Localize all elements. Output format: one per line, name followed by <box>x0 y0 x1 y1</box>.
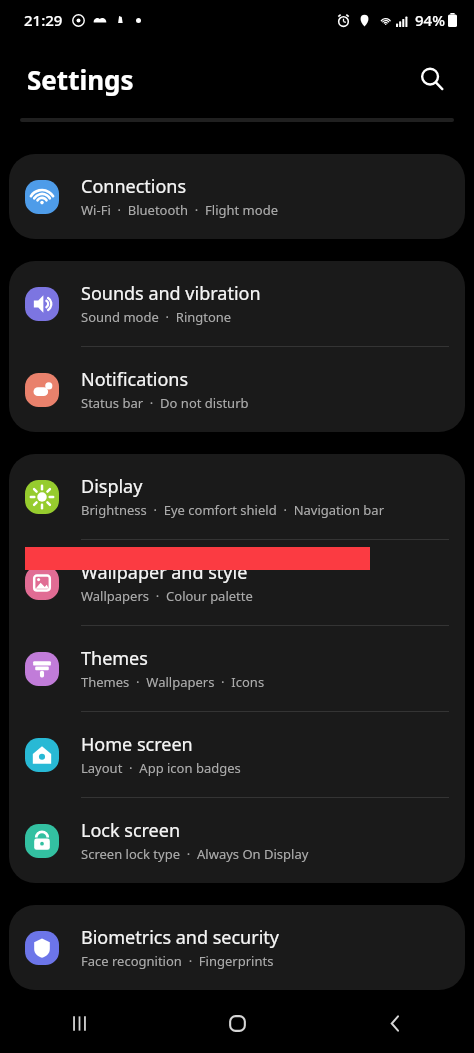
staticText: Status bar · Do not disturb <box>81 394 249 412</box>
button[interactable]: Connections <box>9 154 465 239</box>
staticText: Connections <box>81 174 187 199</box>
staticText: Lock screen <box>81 818 181 843</box>
staticText: Brightness · Eye comfort shield · Naviga… <box>81 501 385 519</box>
button[interactable]: Biometrics and security <box>9 905 465 990</box>
button[interactable]: Wallpaper and style <box>9 540 465 625</box>
staticText: 94% <box>415 10 445 30</box>
button[interactable]: Back <box>316 993 474 1053</box>
button[interactable]: Notifications <box>9 347 465 432</box>
staticText: Layout · App icon badges <box>81 759 241 777</box>
button[interactable]: Home <box>158 993 316 1053</box>
staticText: 21:29 <box>24 10 63 30</box>
staticText: Home screen <box>81 732 193 757</box>
button[interactable]: Recent apps <box>0 993 158 1053</box>
staticText: Display <box>81 474 143 499</box>
staticText: Sounds and vibration <box>81 281 261 306</box>
button[interactable]: Lock screen <box>9 798 465 883</box>
button[interactable]: Home screen <box>9 712 465 797</box>
button[interactable]: Sounds and vibration <box>9 261 465 346</box>
button[interactable]: Themes <box>9 626 465 711</box>
button[interactable]: Display <box>9 454 465 539</box>
staticText: Screen lock type · Always On Display <box>81 845 309 863</box>
staticText: Sound mode · Ringtone <box>81 308 232 326</box>
staticText: Notifications <box>81 367 189 392</box>
staticText: Themes · Wallpapers · Icons <box>81 673 265 691</box>
staticText: Biometrics and security <box>81 925 279 950</box>
button[interactable]: Search <box>410 57 454 101</box>
staticText: Themes <box>81 646 148 671</box>
staticText: Face recognition · Fingerprints <box>81 952 274 970</box>
staticText: Settings <box>27 62 134 97</box>
staticText: Wallpapers · Colour palette <box>81 587 253 605</box>
staticText: Wallpaper and style <box>81 560 248 585</box>
staticText: Wi-Fi · Bluetooth · Flight mode <box>81 201 278 219</box>
